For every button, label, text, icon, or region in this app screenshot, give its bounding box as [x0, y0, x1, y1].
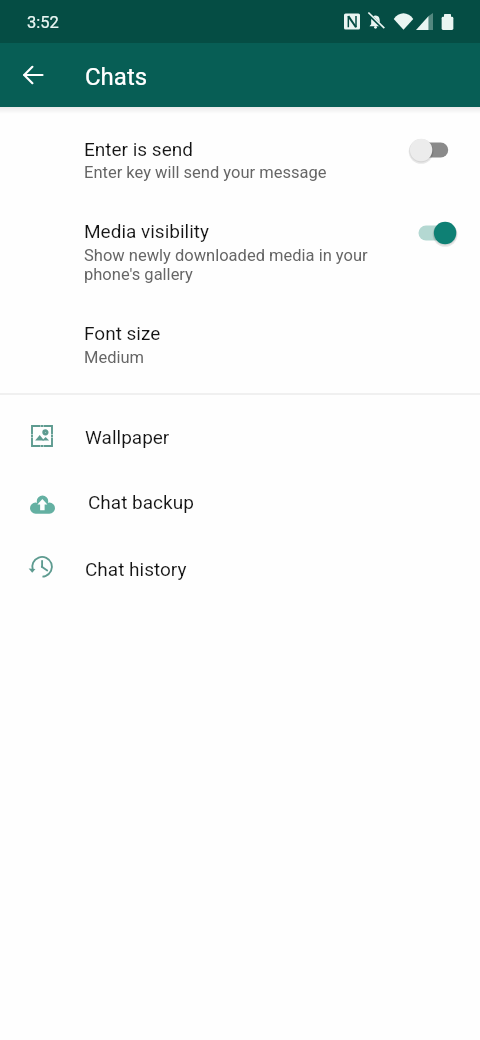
staticText: Enter key will send your message — [84, 163, 327, 182]
staticText: 3:52 — [27, 13, 59, 32]
button[interactable]: Font size — [0, 308, 480, 380]
staticText: Medium — [84, 348, 145, 367]
staticText: Media visibility — [84, 220, 210, 242]
staticText: Chat history — [85, 558, 187, 580]
staticText: Wallpaper — [85, 426, 170, 448]
staticText: Enter is send — [84, 138, 193, 160]
button[interactable]: Media visibility — [0, 202, 480, 298]
button[interactable]: Chat backup — [0, 470, 480, 534]
staticText: Font size — [84, 322, 161, 344]
button[interactable]: Back — [11, 53, 55, 97]
staticText: Chat backup — [88, 491, 194, 513]
staticText: Show newly downloaded media in your phon… — [84, 246, 368, 284]
staticText: Chats — [85, 63, 148, 91]
button[interactable]: Chat history — [0, 536, 480, 600]
button[interactable]: Wallpaper — [0, 404, 480, 468]
button[interactable]: Enter is send — [0, 120, 480, 195]
